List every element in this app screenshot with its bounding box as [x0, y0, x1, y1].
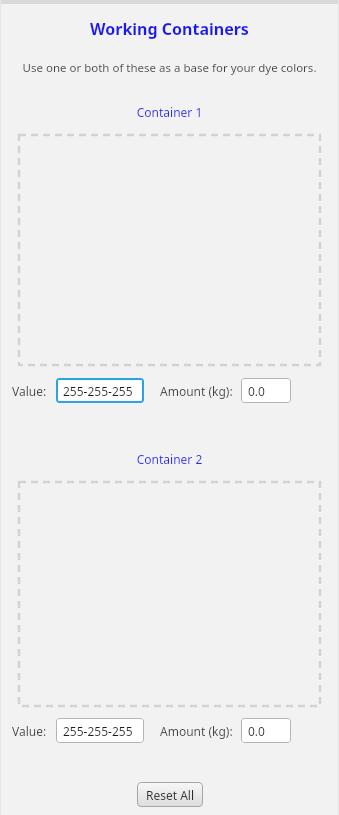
- staticText: Value:: [12, 723, 47, 739]
- staticText: Container 2: [0, 451, 339, 467]
- button[interactable]: Text field 0.0: [241, 378, 291, 403]
- staticText: Amount (kg):: [160, 723, 233, 739]
- button[interactable]: Drop zone: [18, 134, 321, 366]
- button[interactable]: Text field 0.0: [241, 718, 291, 743]
- staticText: Reset All: [146, 787, 195, 803]
- staticText: 255-255-255: [63, 383, 133, 399]
- staticText: Container 1: [0, 104, 339, 120]
- staticText: 0.0: [248, 723, 265, 739]
- staticText: Value:: [12, 383, 47, 399]
- staticText: Use one or both of these as a base for y…: [0, 60, 339, 76]
- staticText: 255-255-255: [63, 723, 133, 739]
- button[interactable]: Text field 255-255-255: [56, 378, 144, 403]
- staticText: Working Containers: [0, 18, 339, 40]
- button[interactable]: Drop zone: [18, 481, 321, 707]
- staticText: Amount (kg):: [160, 383, 233, 399]
- staticText: 0.0: [248, 383, 265, 399]
- button[interactable]: Text field 255-255-255: [56, 718, 144, 743]
- button[interactable]: Reset All: [137, 782, 203, 807]
